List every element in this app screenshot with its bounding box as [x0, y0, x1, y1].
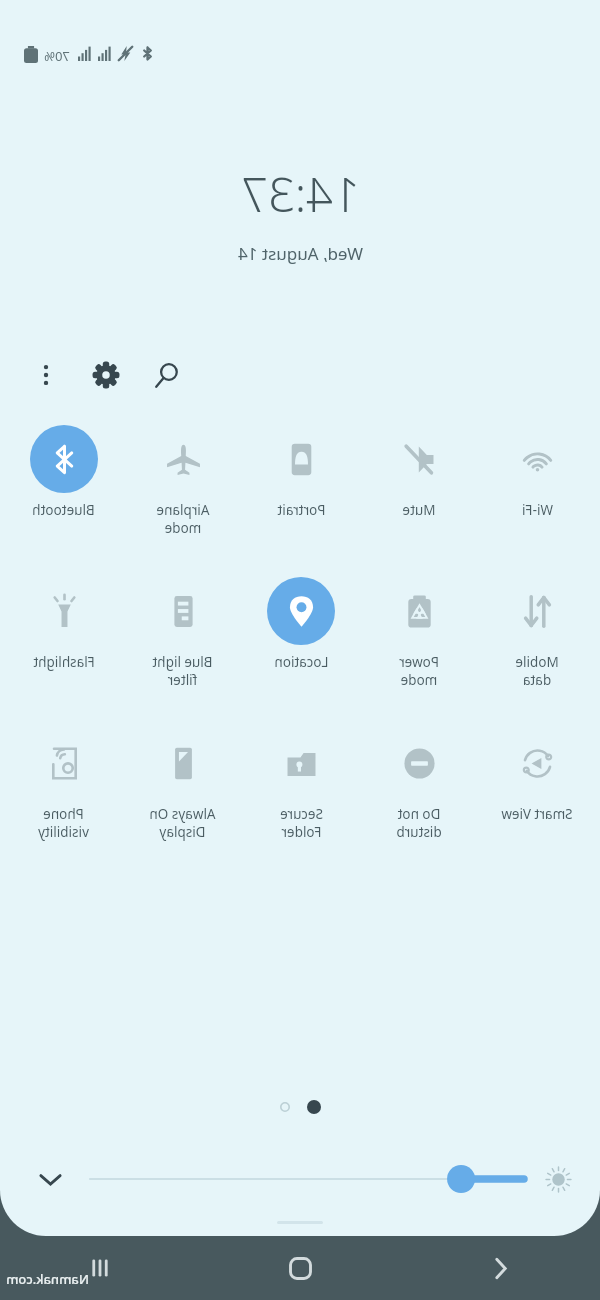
button[interactable]: Location [242, 577, 360, 671]
staticText: Mobile data [515, 653, 559, 689]
button[interactable]: Settings [84, 353, 128, 397]
button[interactable]: Mute [360, 425, 478, 519]
button[interactable]: Always On Display [123, 729, 242, 841]
staticText: Always On Display [149, 805, 216, 841]
staticText: Bluetooth [32, 501, 95, 519]
button[interactable]: Secure Folder [242, 729, 360, 841]
staticText: Airplane mode [156, 501, 210, 537]
staticText: Smart View [501, 805, 573, 823]
button[interactable]: Airplane mode [123, 425, 242, 537]
staticText: Wed, August 14 [238, 242, 363, 265]
button[interactable]: Smart View [478, 729, 596, 823]
button[interactable]: Recent apps [0, 1236, 200, 1300]
staticText: Namnak.com [6, 1270, 89, 1288]
button[interactable]: Adaptive brightness [540, 1161, 576, 1197]
button[interactable]: Brightness [90, 1161, 524, 1197]
staticText: 70% [44, 47, 70, 65]
button[interactable]: Do not disturb [360, 729, 478, 841]
staticText: Wi-Fi [522, 501, 553, 519]
staticText: Power mode [399, 653, 439, 689]
button[interactable]: Mobile data [478, 577, 596, 689]
button[interactable]: Phone visibility [4, 729, 123, 841]
button[interactable]: More options [26, 355, 66, 395]
staticText: Portrait [277, 501, 326, 519]
staticText: Location [274, 653, 329, 671]
button[interactable]: Home [200, 1236, 400, 1300]
button[interactable]: Wi-Fi [478, 425, 596, 519]
staticText: Secure Folder [280, 805, 323, 841]
button[interactable]: Bluetooth [4, 425, 123, 519]
button[interactable]: Portrait [242, 425, 360, 519]
staticText: Blue light filter [152, 653, 213, 689]
staticText: Phone visibility [38, 805, 89, 841]
button[interactable]: Search [144, 353, 188, 397]
staticText: Do not disturb [396, 805, 442, 841]
button[interactable]: Back [400, 1236, 600, 1300]
button[interactable]: Blue light filter [123, 577, 242, 689]
staticText: Mute [402, 501, 436, 519]
button[interactable]: Power mode [360, 577, 478, 689]
button[interactable]: Expand quick settings [32, 1161, 68, 1197]
button[interactable]: Flashlight [4, 577, 123, 671]
staticText: Flashlight [33, 653, 95, 671]
staticText: 14:37 [241, 162, 360, 226]
